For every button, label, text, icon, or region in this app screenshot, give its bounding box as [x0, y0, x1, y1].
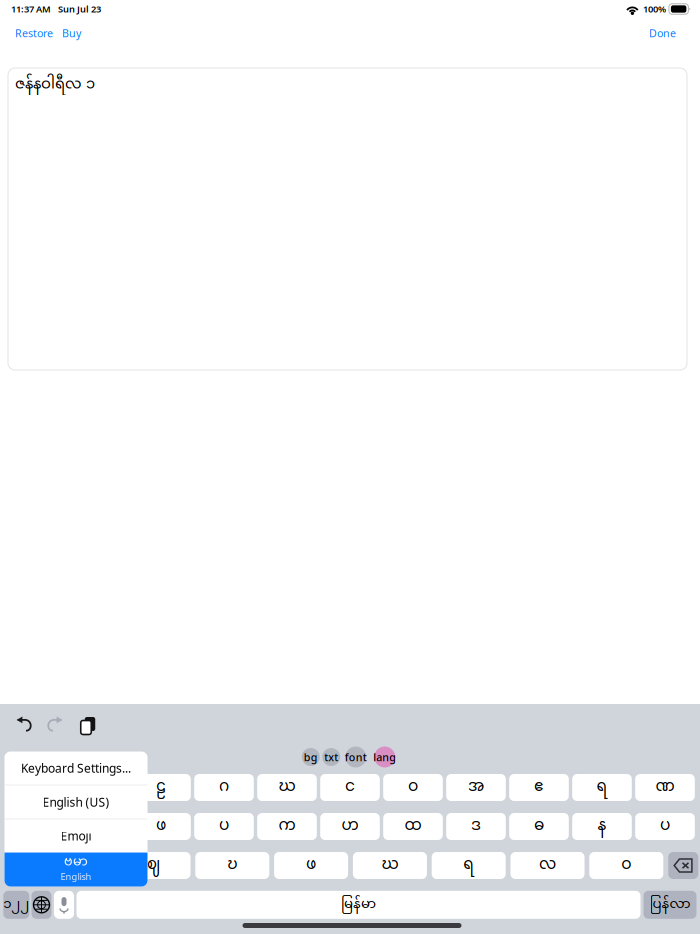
button[interactable]: ဓ	[509, 813, 569, 840]
staticText: ဖ	[306, 849, 316, 882]
staticText: English	[60, 870, 91, 883]
staticText: ဆ	[66, 849, 83, 882]
button[interactable]: ဪ	[5, 813, 65, 840]
button[interactable]: ဟ	[320, 813, 380, 840]
staticText: လ	[539, 849, 556, 882]
staticText: ဗမာ	[64, 849, 88, 876]
staticText: Buy	[62, 26, 81, 40]
button[interactable]: ၁၂၂	[3, 891, 29, 919]
staticText: Emoji	[60, 828, 91, 844]
button[interactable]: ရ	[572, 774, 632, 801]
staticText: 100%	[643, 3, 666, 15]
staticText: င	[345, 771, 355, 804]
staticText: ဝ	[621, 849, 631, 882]
button[interactable]: Redo	[40, 710, 70, 738]
staticText: ဟ	[341, 810, 358, 843]
button[interactable]: မြန်မာ	[76, 891, 640, 919]
button[interactable]: ဎ	[68, 774, 128, 801]
button[interactable]: ပ	[635, 813, 695, 840]
staticText: ဒ	[471, 810, 481, 843]
staticText: English (US)	[42, 794, 109, 810]
button[interactable]: txt	[322, 746, 340, 767]
button[interactable]: လ	[510, 852, 584, 879]
button[interactable]: font	[343, 746, 369, 767]
staticText: ထ	[404, 810, 421, 843]
button[interactable]: ဈ	[116, 852, 190, 879]
button[interactable]: Emoji	[4, 819, 147, 852]
staticText: Restore	[15, 26, 53, 40]
button[interactable]: ဃ	[353, 852, 427, 879]
button[interactable]: ဒ	[446, 813, 506, 840]
button[interactable]: ဧ	[509, 774, 569, 801]
staticText: ဂ	[219, 771, 229, 804]
staticText: Keyboard Settings...	[21, 760, 131, 776]
staticText: ဎ	[93, 771, 103, 804]
button[interactable]: Dictate	[54, 891, 74, 919]
staticText: ဠ	[156, 771, 166, 804]
button[interactable]: င	[320, 774, 380, 801]
button[interactable]: Paste	[71, 710, 101, 738]
button[interactable]: English (US)	[4, 785, 147, 819]
staticText: ဧ	[534, 771, 544, 804]
staticText: ပ	[660, 810, 670, 843]
staticText: န	[597, 810, 606, 843]
staticText: ဖ	[156, 810, 166, 843]
staticText: အ	[468, 771, 484, 804]
button[interactable]: ဏ	[635, 774, 695, 801]
staticText: Done	[649, 26, 676, 40]
button[interactable]: ဠ	[131, 774, 191, 801]
button[interactable]: ဖ	[131, 813, 191, 840]
staticText: ဎ	[227, 849, 237, 882]
button[interactable]: ဂ	[194, 774, 254, 801]
staticText: ဏ	[655, 771, 674, 804]
button[interactable]: ဃ	[5, 774, 65, 801]
staticText: 11:37 AM	[11, 3, 51, 15]
button[interactable]: Backspace	[668, 852, 698, 879]
staticText: မြန်မာ	[341, 890, 376, 919]
staticText: ဝ	[408, 771, 418, 804]
button[interactable]: Switch keyboard	[31, 891, 51, 919]
staticText: ဓ	[534, 810, 544, 843]
button[interactable]: ဃ	[257, 774, 317, 801]
staticText: ဃ	[278, 771, 295, 804]
button[interactable]: ဆ	[38, 852, 112, 879]
button[interactable]: ပြန်လာ	[643, 891, 696, 919]
button[interactable]: bg	[302, 746, 320, 767]
button[interactable]: က	[257, 813, 317, 840]
staticText: ရ	[596, 771, 607, 804]
button[interactable]: ထ	[383, 813, 443, 840]
button[interactable]: ဗမာ	[4, 852, 147, 886]
staticText: က	[278, 810, 295, 843]
button[interactable]: အ	[446, 774, 506, 801]
staticText: Sun Jul 23	[58, 3, 101, 15]
staticText: ပ	[219, 810, 229, 843]
button[interactable]: န	[572, 813, 632, 840]
button[interactable]: Restore	[15, 20, 53, 46]
button[interactable]: Buy	[53, 20, 81, 46]
button[interactable]: lang	[371, 746, 398, 767]
button[interactable]: Keyboard Settings...	[4, 751, 147, 785]
button[interactable]: ဝ	[383, 774, 443, 801]
staticText: bg	[304, 750, 318, 764]
staticText: ဃ	[381, 849, 398, 882]
staticText: ဇန်နဝါရီလ ၁	[15, 69, 95, 101]
button[interactable]: ဝ	[589, 852, 663, 879]
staticText: font	[345, 750, 367, 764]
staticText: ဃ	[26, 771, 43, 804]
staticText: lang	[373, 750, 396, 764]
button[interactable]: ဎ	[195, 852, 269, 879]
button[interactable]: ဖ	[274, 852, 348, 879]
staticText: txt	[324, 750, 338, 764]
button[interactable]: Done	[649, 20, 676, 46]
staticText: ၁၂၂	[3, 890, 29, 919]
button[interactable]: ရ	[432, 852, 506, 879]
staticText: ရ	[463, 849, 474, 882]
button[interactable]: ပ	[194, 813, 254, 840]
staticText: ဈ	[147, 849, 160, 882]
button[interactable]: ဥ	[68, 813, 128, 840]
button[interactable]: Undo	[9, 710, 39, 738]
staticText: ပြန်လာ	[649, 890, 690, 919]
